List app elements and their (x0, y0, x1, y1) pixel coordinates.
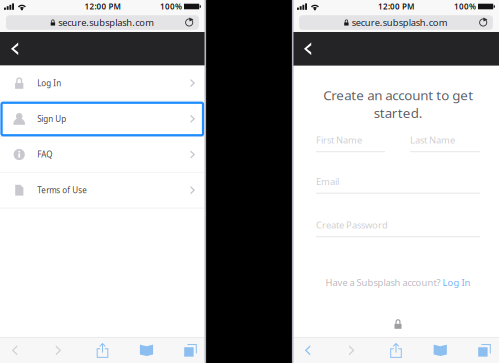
staticText: Log In (37, 78, 61, 88)
button[interactable]: Share (382, 338, 409, 363)
staticText: Sign Up (37, 113, 66, 124)
button[interactable]: Forward (338, 338, 365, 363)
button[interactable]: Sign Up (0, 101, 205, 136)
staticText: secure.subsplash.com (58, 16, 154, 29)
button[interactable]: secure.subsplash.com (6, 15, 199, 30)
staticText: Create Password (316, 219, 388, 231)
staticText: Log In (442, 276, 470, 289)
button[interactable]: Log In (442, 276, 470, 289)
button[interactable]: Back (0, 33, 31, 64)
staticText: First Name (316, 134, 362, 146)
staticText: 12:00 PM (84, 1, 120, 12)
button[interactable]: Tabs (177, 338, 204, 363)
button[interactable]: Forward (45, 338, 72, 363)
staticText: 12:00 PM (378, 1, 414, 12)
button[interactable]: Terms of Use (0, 173, 205, 208)
staticText: Terms of Use (37, 185, 87, 195)
staticText: Have a Subsplash account? (325, 276, 442, 289)
button[interactable]: Share (89, 338, 116, 363)
staticText: FAQ (37, 149, 52, 160)
staticText: Last Name (410, 134, 455, 146)
button[interactable]: Back (1, 338, 28, 363)
staticText: 100% (454, 1, 476, 12)
button[interactable]: FAQ (0, 137, 205, 172)
staticText: Email (316, 175, 339, 188)
button[interactable]: Log In (0, 66, 205, 101)
button[interactable]: secure.subsplash.com (299, 15, 493, 30)
staticText: secure.subsplash.com (352, 16, 448, 29)
staticText: Create an account to get started. (323, 86, 473, 122)
button[interactable]: Tabs (471, 338, 498, 363)
button[interactable]: Bookmarks (133, 338, 160, 363)
button[interactable]: Back (294, 338, 321, 363)
button[interactable]: Bookmarks (427, 338, 454, 363)
staticText: 100% (160, 1, 182, 12)
button[interactable]: Back (293, 33, 324, 64)
